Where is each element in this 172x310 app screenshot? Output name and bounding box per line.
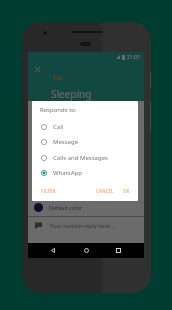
button[interactable]: Home xyxy=(73,243,99,258)
staticText: Title xyxy=(53,75,63,81)
staticText: Calls and Messages xyxy=(53,154,108,162)
staticText: WhatsApp xyxy=(53,169,82,177)
staticText: Responds to: xyxy=(40,106,77,114)
button[interactable]: Back xyxy=(40,243,66,258)
button[interactable]: Call xyxy=(32,119,138,134)
staticText: 21:07 xyxy=(127,54,140,61)
staticText: Message xyxy=(53,138,79,146)
button[interactable]: CANCEL xyxy=(94,185,116,196)
staticText: OK xyxy=(123,188,130,194)
staticText: Call xyxy=(53,123,64,131)
button[interactable]: Message xyxy=(32,134,138,149)
staticText: Your custom reply here ... xyxy=(50,222,116,229)
button[interactable]: Close xyxy=(30,62,45,77)
button[interactable]: Your custom reply here ... xyxy=(28,217,144,234)
button[interactable]: OK xyxy=(119,185,133,196)
button[interactable]: Calls and Messages xyxy=(32,150,138,165)
staticText: FILTER xyxy=(41,188,56,194)
staticText: Sleeping xyxy=(51,87,92,101)
button[interactable]: WhatsApp xyxy=(32,165,138,180)
button[interactable]: FILTER xyxy=(37,185,59,196)
button[interactable]: Default color xyxy=(28,199,144,216)
staticText: CANCEL xyxy=(96,188,114,194)
button[interactable]: Recent apps xyxy=(105,243,131,258)
staticText: Default color xyxy=(49,204,83,211)
